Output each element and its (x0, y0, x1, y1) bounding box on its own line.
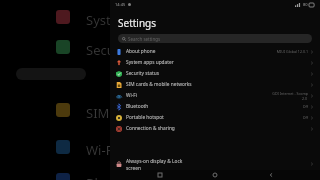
staticText: Security status (126, 70, 159, 77)
staticText: Secu (86, 41, 115, 59)
button[interactable]: Recents (154, 170, 166, 180)
staticText: Blue (86, 174, 114, 180)
staticText: GDI Internet - Scomp (272, 91, 308, 96)
button[interactable]: System apps updater (110, 57, 320, 68)
button[interactable]: Security status (110, 68, 320, 79)
staticText: Portable hotspot (126, 114, 164, 121)
button[interactable]: About phone (110, 46, 320, 57)
staticText: 14:45 (115, 2, 126, 7)
staticText: SIM cards & mobile networks (126, 81, 192, 88)
button[interactable]: Always-on display & Lock (110, 158, 320, 170)
staticText: MIUI Global 12.0.1 (276, 49, 308, 54)
button[interactable]: SIM cards & mobile networks (110, 79, 320, 90)
button[interactable]: Back (265, 170, 277, 180)
staticText: Bluetooth (126, 103, 149, 110)
staticText: Syst (86, 11, 111, 29)
staticText: Settings (118, 16, 157, 30)
button[interactable]: Portable hotspot (110, 112, 320, 123)
staticText: Wi-Fi (126, 92, 137, 99)
staticText: Off (302, 115, 308, 120)
staticText: Off (302, 104, 308, 109)
staticText: SIM (86, 104, 110, 122)
staticText: screen (126, 165, 141, 170)
staticText: Wi-F (86, 141, 113, 159)
staticText: Connection & sharing (126, 125, 175, 132)
button[interactable]: Bluetooth (110, 101, 320, 112)
button[interactable]: Connection & sharing (110, 123, 320, 134)
button[interactable]: Home (209, 170, 221, 180)
staticText: About phone (126, 48, 156, 55)
staticText: System apps updater (126, 59, 174, 66)
staticText: 2.0 (302, 96, 308, 101)
button[interactable]: Wi-Fi (110, 90, 320, 101)
button[interactable]: Search settings (118, 34, 312, 43)
staticText: 80 (303, 2, 308, 7)
staticText: Search settings (128, 36, 161, 42)
staticText: Always-on display & Lock (126, 158, 183, 165)
